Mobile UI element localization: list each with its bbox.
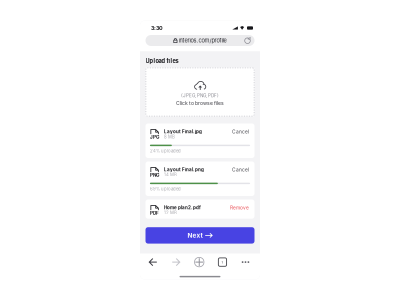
button[interactable]: Cancel (231, 167, 250, 172)
staticText: interios.com/profile (179, 37, 227, 44)
staticText: Cancel (232, 167, 249, 173)
staticText: (JPEG, PNG, PDF) (181, 93, 219, 98)
staticText: Home plan2.pdf (164, 205, 201, 210)
button[interactable]: Back (147, 256, 159, 268)
button[interactable]: More (239, 256, 251, 268)
staticText: 1 (221, 260, 223, 264)
button[interactable]: Cancel (231, 129, 250, 134)
button[interactable]: Forward (170, 256, 182, 268)
staticText: 12 MB (164, 210, 177, 215)
staticText: PNG (150, 172, 159, 178)
staticText: Layout Final.jpg (164, 129, 202, 134)
staticText: JPG (150, 134, 159, 140)
button[interactable]: (JPEG, PNG, PDF) (145, 67, 254, 116)
staticText: Remove (230, 205, 249, 211)
button[interactable]: Next (145, 227, 254, 244)
staticText: Click to browse files (176, 100, 224, 106)
staticText: Next (187, 231, 202, 239)
staticText: 8 MB (164, 134, 175, 139)
button[interactable]: interios.com/profile (145, 35, 254, 46)
staticText: Upload files (145, 58, 178, 64)
staticText: 69% uploaded (150, 186, 181, 192)
staticText: PDF (150, 210, 159, 216)
button[interactable]: Tabs (216, 256, 228, 268)
button[interactable]: Remove (229, 205, 250, 210)
staticText: 24% uploaded (150, 148, 181, 154)
staticText: Cancel (232, 129, 249, 135)
staticText: 14 MB (164, 172, 177, 177)
staticText: Layout Final.png (164, 167, 204, 172)
staticText: 3:30 (151, 25, 163, 31)
button[interactable]: Share (193, 256, 205, 268)
